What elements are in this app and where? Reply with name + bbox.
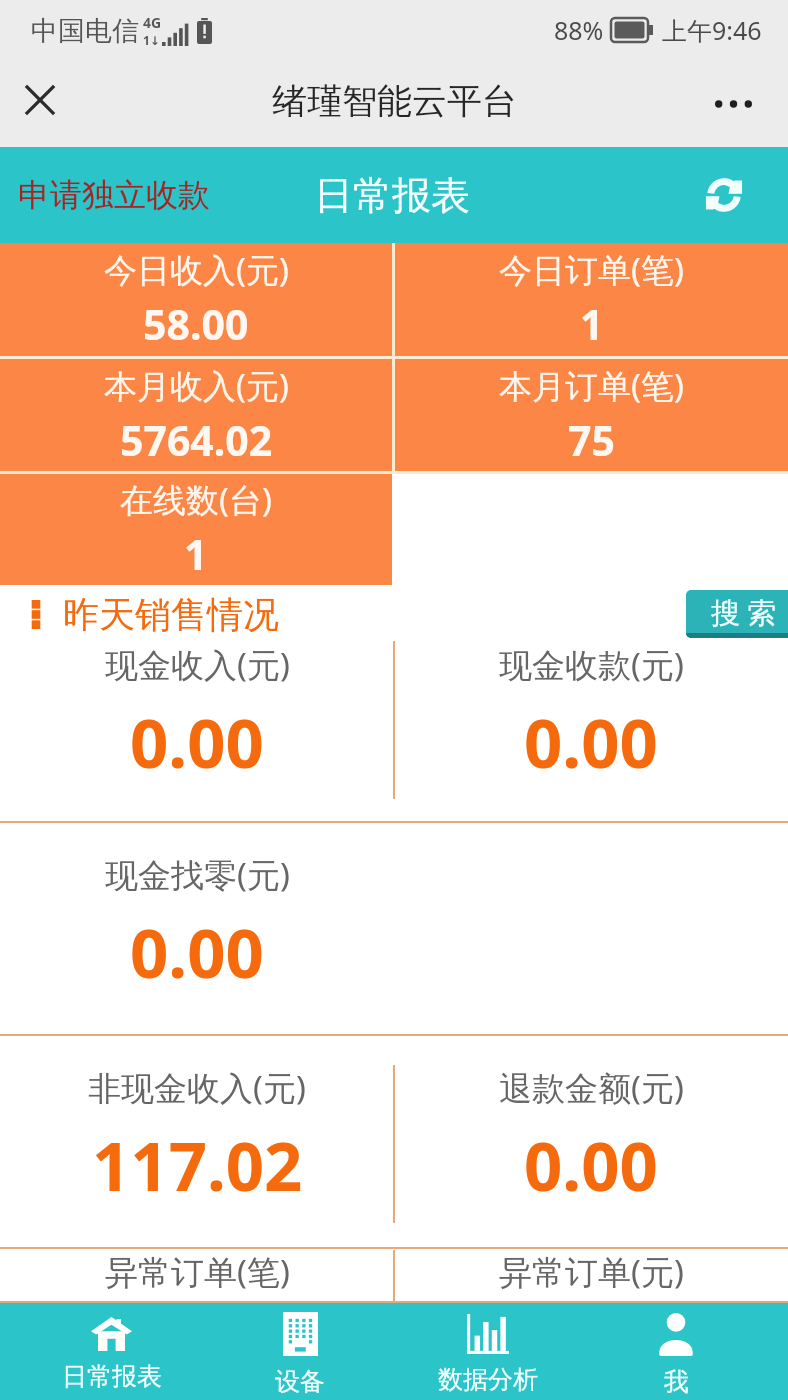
- staticText: 0.00: [130, 906, 264, 997]
- button[interactable]: 现金收入(元): [0, 616, 394, 812]
- staticText: 现金收入(元): [105, 642, 290, 687]
- staticText: 非现金收入(元): [88, 1065, 306, 1110]
- button[interactable]: 异常订单(笔): [0, 1249, 394, 1292]
- staticText: 117.02: [92, 1119, 303, 1210]
- button[interactable]: 今日收入(元): [0, 243, 392, 356]
- button[interactable]: 异常订单(元): [394, 1249, 788, 1292]
- staticText: 搜 索: [711, 592, 777, 632]
- staticText: 异常订单(笔): [105, 1249, 290, 1292]
- staticText: 数据分析: [438, 1364, 538, 1395]
- staticText: 设备: [275, 1366, 325, 1397]
- staticText: 0.00: [130, 696, 264, 787]
- button[interactable]: 现金收款(元): [394, 616, 788, 812]
- staticText: 退款金额(元): [499, 1065, 684, 1110]
- staticText: 中国电信: [31, 14, 139, 48]
- staticText: 0.00: [524, 696, 658, 787]
- staticText: 75: [568, 412, 615, 468]
- staticText: 4G: [143, 13, 162, 32]
- staticText: 日常报表: [314, 171, 470, 220]
- staticText: 绪瑾智能云平台: [272, 79, 517, 123]
- button[interactable]: 搜 索: [686, 590, 788, 638]
- button[interactable]: More options: [696, 67, 770, 141]
- button[interactable]: 日常报表: [17, 1303, 206, 1400]
- staticText: 5764.02: [120, 412, 273, 468]
- staticText: 在线数(台): [120, 477, 272, 522]
- button[interactable]: 数据分析: [394, 1303, 582, 1400]
- staticText: 1↓: [143, 32, 160, 48]
- button[interactable]: 现金找零(元): [0, 823, 394, 1025]
- staticText: 异常订单(元): [499, 1249, 684, 1292]
- button[interactable]: 非现金收入(元): [0, 1036, 394, 1238]
- staticText: 本月订单(笔): [499, 363, 684, 408]
- button[interactable]: Close: [0, 60, 80, 140]
- staticText: 我: [664, 1366, 689, 1397]
- button[interactable]: 本月订单(笔): [395, 359, 788, 471]
- button[interactable]: Refresh: [696, 167, 752, 223]
- staticText: 1: [580, 296, 604, 352]
- staticText: 上午9:46: [662, 13, 762, 47]
- staticText: 现金找零(元): [105, 852, 290, 897]
- button[interactable]: 昨天销售情况: [30, 592, 279, 637]
- staticText: 今日订单(笔): [499, 247, 684, 292]
- button[interactable]: 申请独立收款: [18, 175, 210, 215]
- staticText: 58.00: [143, 296, 249, 352]
- staticText: 0.00: [524, 1119, 658, 1210]
- button[interactable]: 退款金额(元): [394, 1036, 788, 1238]
- staticText: 今日收入(元): [104, 247, 289, 292]
- button[interactable]: 在线数(台): [0, 474, 392, 585]
- button[interactable]: 本月收入(元): [0, 359, 392, 471]
- button[interactable]: 设备: [206, 1303, 394, 1400]
- staticText: 本月收入(元): [104, 363, 289, 408]
- staticText: 1: [184, 526, 208, 582]
- staticText: 88%: [554, 13, 604, 47]
- button[interactable]: 今日订单(笔): [395, 243, 788, 356]
- staticText: 昨天销售情况: [63, 592, 279, 637]
- staticText: 日常报表: [62, 1361, 162, 1392]
- staticText: 现金收款(元): [499, 642, 684, 687]
- button[interactable]: 我: [582, 1303, 770, 1400]
